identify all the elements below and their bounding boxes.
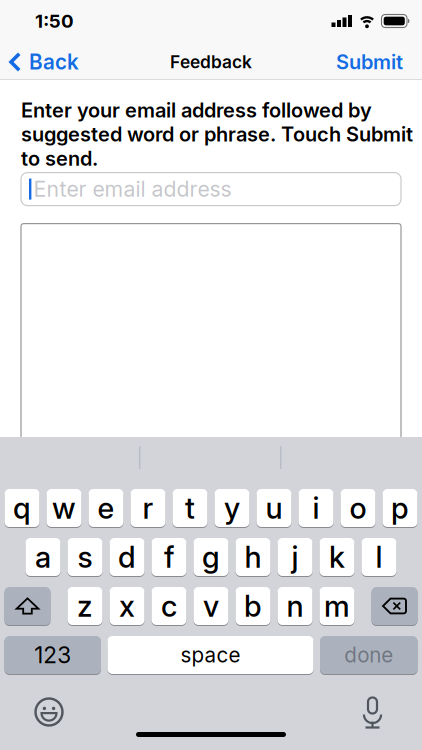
staticText: Feedback [170, 51, 252, 72]
staticText: space [180, 642, 240, 667]
staticText: b [244, 588, 262, 624]
staticText: h [244, 539, 261, 575]
staticText: d [118, 539, 136, 575]
button[interactable]: s [67, 538, 102, 576]
button[interactable]: Submit [336, 50, 422, 74]
staticText: q [13, 490, 31, 526]
button[interactable]: y [214, 489, 249, 527]
staticText: e [97, 490, 114, 526]
button[interactable]: Dictate [360, 697, 417, 727]
button[interactable]: a [25, 538, 60, 576]
staticText: v [203, 588, 219, 624]
button[interactable]: z [67, 587, 102, 625]
button[interactable]: 123 [4, 636, 101, 674]
staticText: done [344, 642, 393, 667]
staticText: t [185, 490, 195, 526]
staticText: y [224, 490, 240, 526]
staticText: i [312, 490, 319, 526]
button[interactable]: m [319, 587, 354, 625]
staticText: Back [29, 49, 79, 74]
button[interactable]: Enter email address [0, 171, 422, 206]
button[interactable]: u [256, 489, 291, 527]
staticText: g [202, 539, 220, 575]
button[interactable]: k [319, 538, 354, 576]
staticText: u [265, 490, 282, 526]
button[interactable]: h [235, 538, 270, 576]
button[interactable]: n [277, 587, 312, 625]
staticText: c [161, 588, 177, 624]
button[interactable]: o [340, 489, 375, 527]
button[interactable]: q [4, 489, 39, 527]
staticText: Submit [336, 50, 403, 74]
staticText: Enter your email address followed by sug… [21, 98, 413, 171]
button[interactable]: w [46, 489, 81, 527]
staticText: m [324, 588, 350, 624]
button[interactable]: Back [0, 49, 79, 74]
staticText: f [164, 539, 174, 575]
button[interactable]: d [109, 538, 144, 576]
staticText: r [142, 490, 153, 526]
staticText: p [391, 490, 409, 526]
button[interactable]: t [172, 489, 207, 527]
button[interactable]: b [235, 587, 270, 625]
button[interactable]: Emoji [4, 698, 62, 725]
button[interactable]: x [109, 587, 144, 625]
staticText: x [119, 588, 135, 624]
staticText: 1:50 [35, 10, 74, 32]
button[interactable]: e [88, 489, 123, 527]
staticText: n [286, 588, 303, 624]
button[interactable]: Feedback text [0, 206, 422, 437]
staticText: a [35, 539, 51, 575]
button[interactable]: space [107, 636, 313, 674]
button[interactable]: j [277, 538, 312, 576]
button[interactable]: c [151, 587, 186, 625]
button[interactable]: r [130, 489, 165, 527]
staticText: z [77, 588, 93, 624]
button[interactable]: done [320, 636, 417, 674]
staticText: s [77, 539, 92, 575]
staticText: Enter email address [33, 176, 231, 202]
button[interactable]: l [361, 538, 396, 576]
button[interactable]: f [151, 538, 186, 576]
button[interactable]: i [298, 489, 333, 527]
staticText: l [375, 539, 382, 575]
staticText: o [349, 490, 366, 526]
staticText: 123 [34, 641, 71, 669]
staticText: w [52, 490, 76, 526]
button[interactable]: p [382, 489, 417, 527]
button[interactable]: Shift [4, 587, 50, 625]
button[interactable]: Delete [371, 587, 417, 625]
staticText: j [291, 539, 298, 575]
button[interactable]: v [193, 587, 228, 625]
staticText: k [329, 539, 345, 575]
button[interactable]: g [193, 538, 228, 576]
